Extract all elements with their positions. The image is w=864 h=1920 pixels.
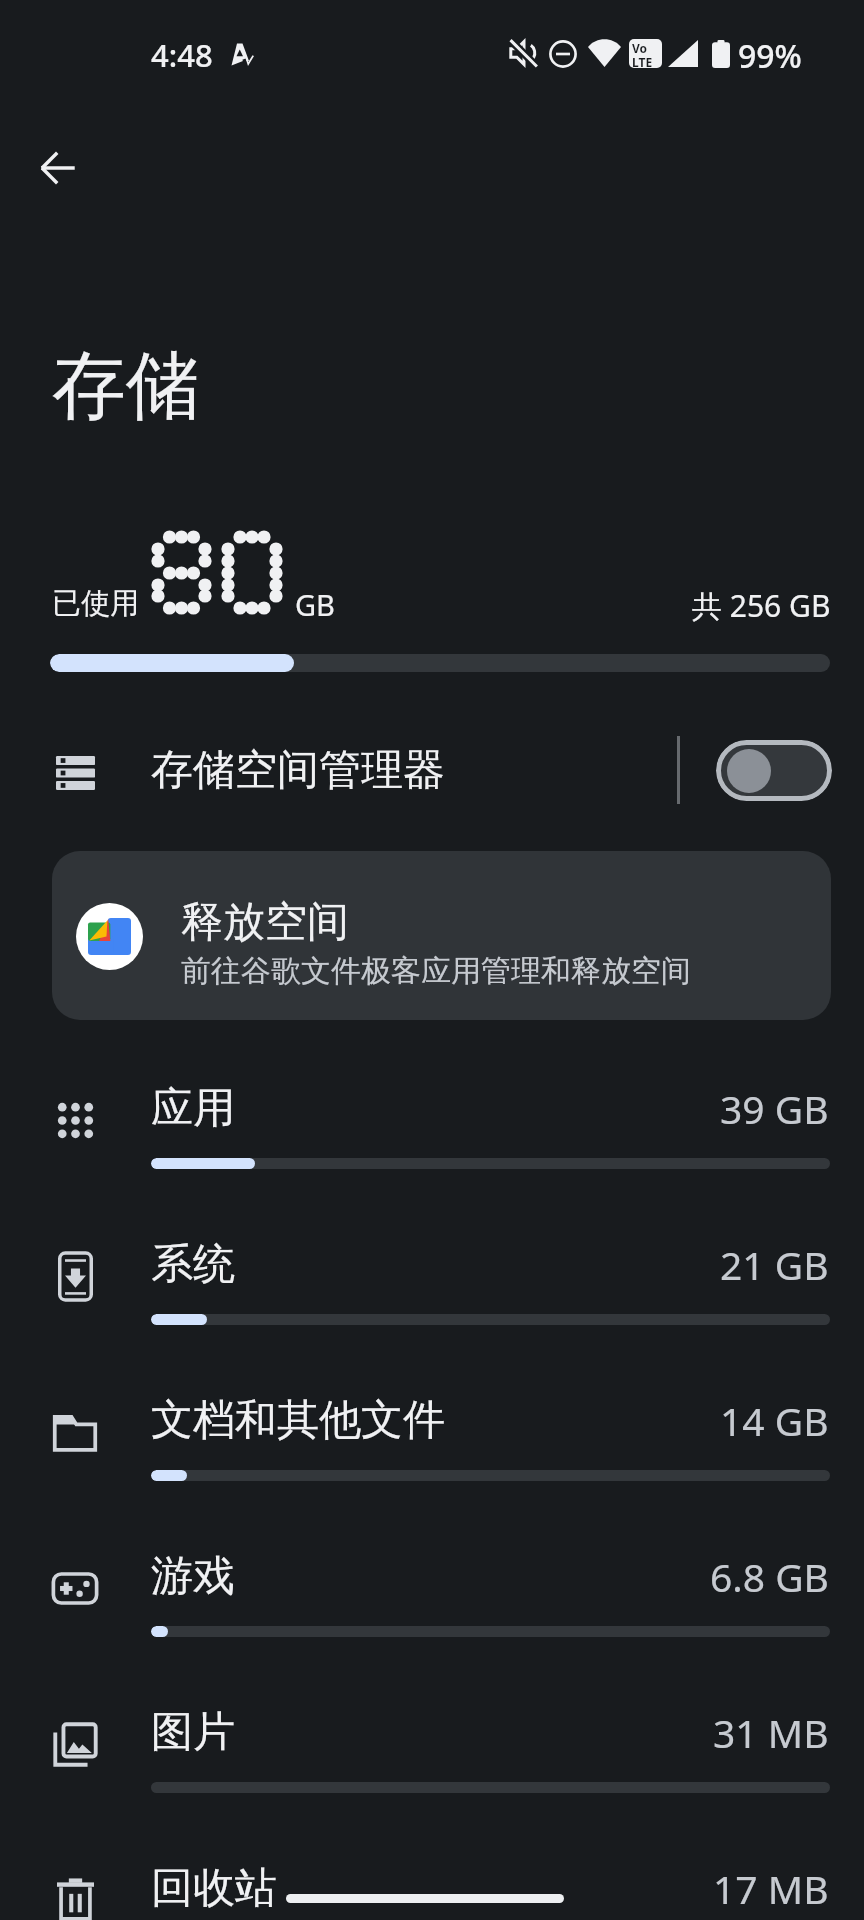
button[interactable]: 释放空间	[52, 851, 831, 1020]
staticText: GB	[295, 585, 335, 624]
staticText: 文档和其他文件	[151, 1394, 445, 1447]
staticText: 21 GB	[720, 1238, 829, 1291]
staticText: 39 GB	[720, 1082, 829, 1135]
staticText: 图片	[151, 1706, 235, 1759]
button[interactable]: Back	[26, 136, 90, 200]
staticText: 存储	[52, 340, 200, 433]
staticText: 17 MB	[713, 1862, 829, 1915]
button[interactable]: 文档和其他文件	[0, 1358, 864, 1514]
staticText: 系统	[151, 1238, 235, 1291]
button[interactable]: Storage manager	[716, 740, 832, 801]
button[interactable]: 游戏	[0, 1514, 864, 1670]
staticText: 共 256 GB	[692, 585, 831, 626]
staticText: 前往谷歌文件极客应用管理和释放空间	[181, 952, 691, 990]
staticText: Vo LTE	[632, 40, 653, 68]
staticText: 14 GB	[720, 1394, 829, 1447]
staticText: 已使用	[52, 585, 139, 622]
staticText: 4:48	[151, 34, 213, 76]
staticText: 存储空间管理器	[151, 744, 445, 797]
button[interactable]: 系统	[0, 1202, 864, 1358]
button[interactable]: 图片	[0, 1670, 864, 1826]
button[interactable]: 存储空间管理器	[0, 706, 864, 834]
button[interactable]: 应用	[0, 1046, 864, 1202]
staticText: 6.8 GB	[710, 1550, 829, 1603]
staticText: 游戏	[151, 1550, 235, 1603]
button[interactable]: 回收站	[0, 1826, 864, 1920]
staticText: 释放空间	[181, 896, 349, 949]
staticText: 回收站	[151, 1862, 277, 1915]
staticText: 31 MB	[713, 1706, 829, 1759]
staticText: 99%	[738, 34, 802, 78]
staticText: 应用	[151, 1082, 235, 1135]
